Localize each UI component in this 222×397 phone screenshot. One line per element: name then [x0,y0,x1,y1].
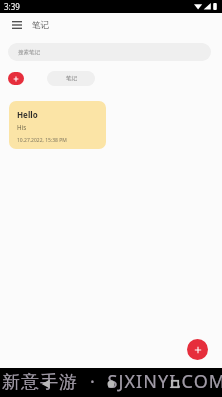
button[interactable]: 搜索笔记 [8,43,211,61]
button[interactable]: Menu [10,18,24,32]
staticText: 笔记 [32,20,49,31]
staticText: 3:39 [4,1,20,12]
staticText: 新意手游 · SJXINYI.COM [2,369,222,394]
button[interactable]: Recents [166,375,184,393]
staticText: 10.27.2022, 15:38 PM [17,137,67,144]
button[interactable]: 笔记 [47,71,95,86]
button[interactable]: Home [102,375,120,393]
button[interactable]: Add category [8,72,24,85]
staticText: Hello [17,109,38,120]
button[interactable]: Hello [9,101,106,149]
button[interactable]: Add note [187,339,208,360]
staticText: 搜索笔记 [18,49,40,56]
button[interactable]: Back [37,375,55,393]
staticText: His [17,123,27,131]
staticText: 笔记 [66,75,77,82]
